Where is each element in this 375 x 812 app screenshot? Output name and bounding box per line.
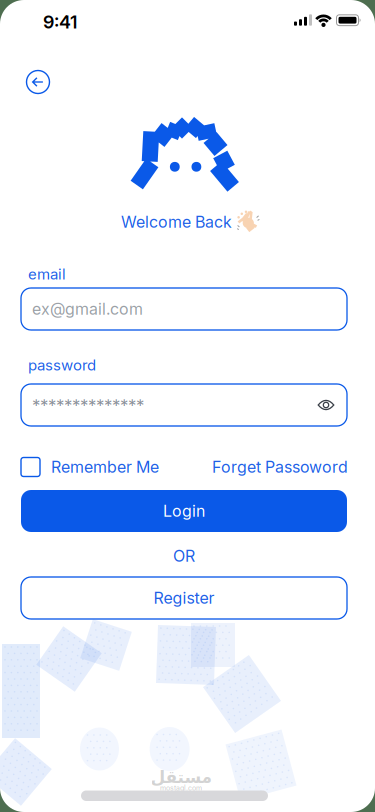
button[interactable]: Remember Me [21, 457, 159, 476]
staticText: Register [153, 589, 214, 607]
button[interactable]: Forget Passoword [212, 458, 348, 476]
staticText: mostaql.com [160, 784, 202, 792]
staticText: ************** [32, 395, 144, 415]
button[interactable]: Register [21, 577, 347, 619]
button[interactable]: ex@gmail.com [21, 288, 347, 330]
button[interactable]: ************** [21, 384, 347, 426]
button[interactable]: Back [26, 70, 49, 93]
staticText: Remember Me [51, 458, 159, 476]
staticText: Welcome Back [121, 213, 232, 231]
staticText: email [28, 265, 66, 283]
staticText: ex@gmail.com [32, 300, 143, 318]
staticText: مستقل [150, 767, 212, 787]
staticText: Login [163, 502, 205, 520]
staticText: 9:41 [43, 11, 77, 33]
staticText: password [28, 356, 96, 374]
staticText: Forget Passoword [212, 458, 348, 476]
button[interactable]: Show password [315, 394, 337, 416]
staticText: OR [173, 547, 195, 565]
button[interactable]: Login [21, 490, 347, 532]
